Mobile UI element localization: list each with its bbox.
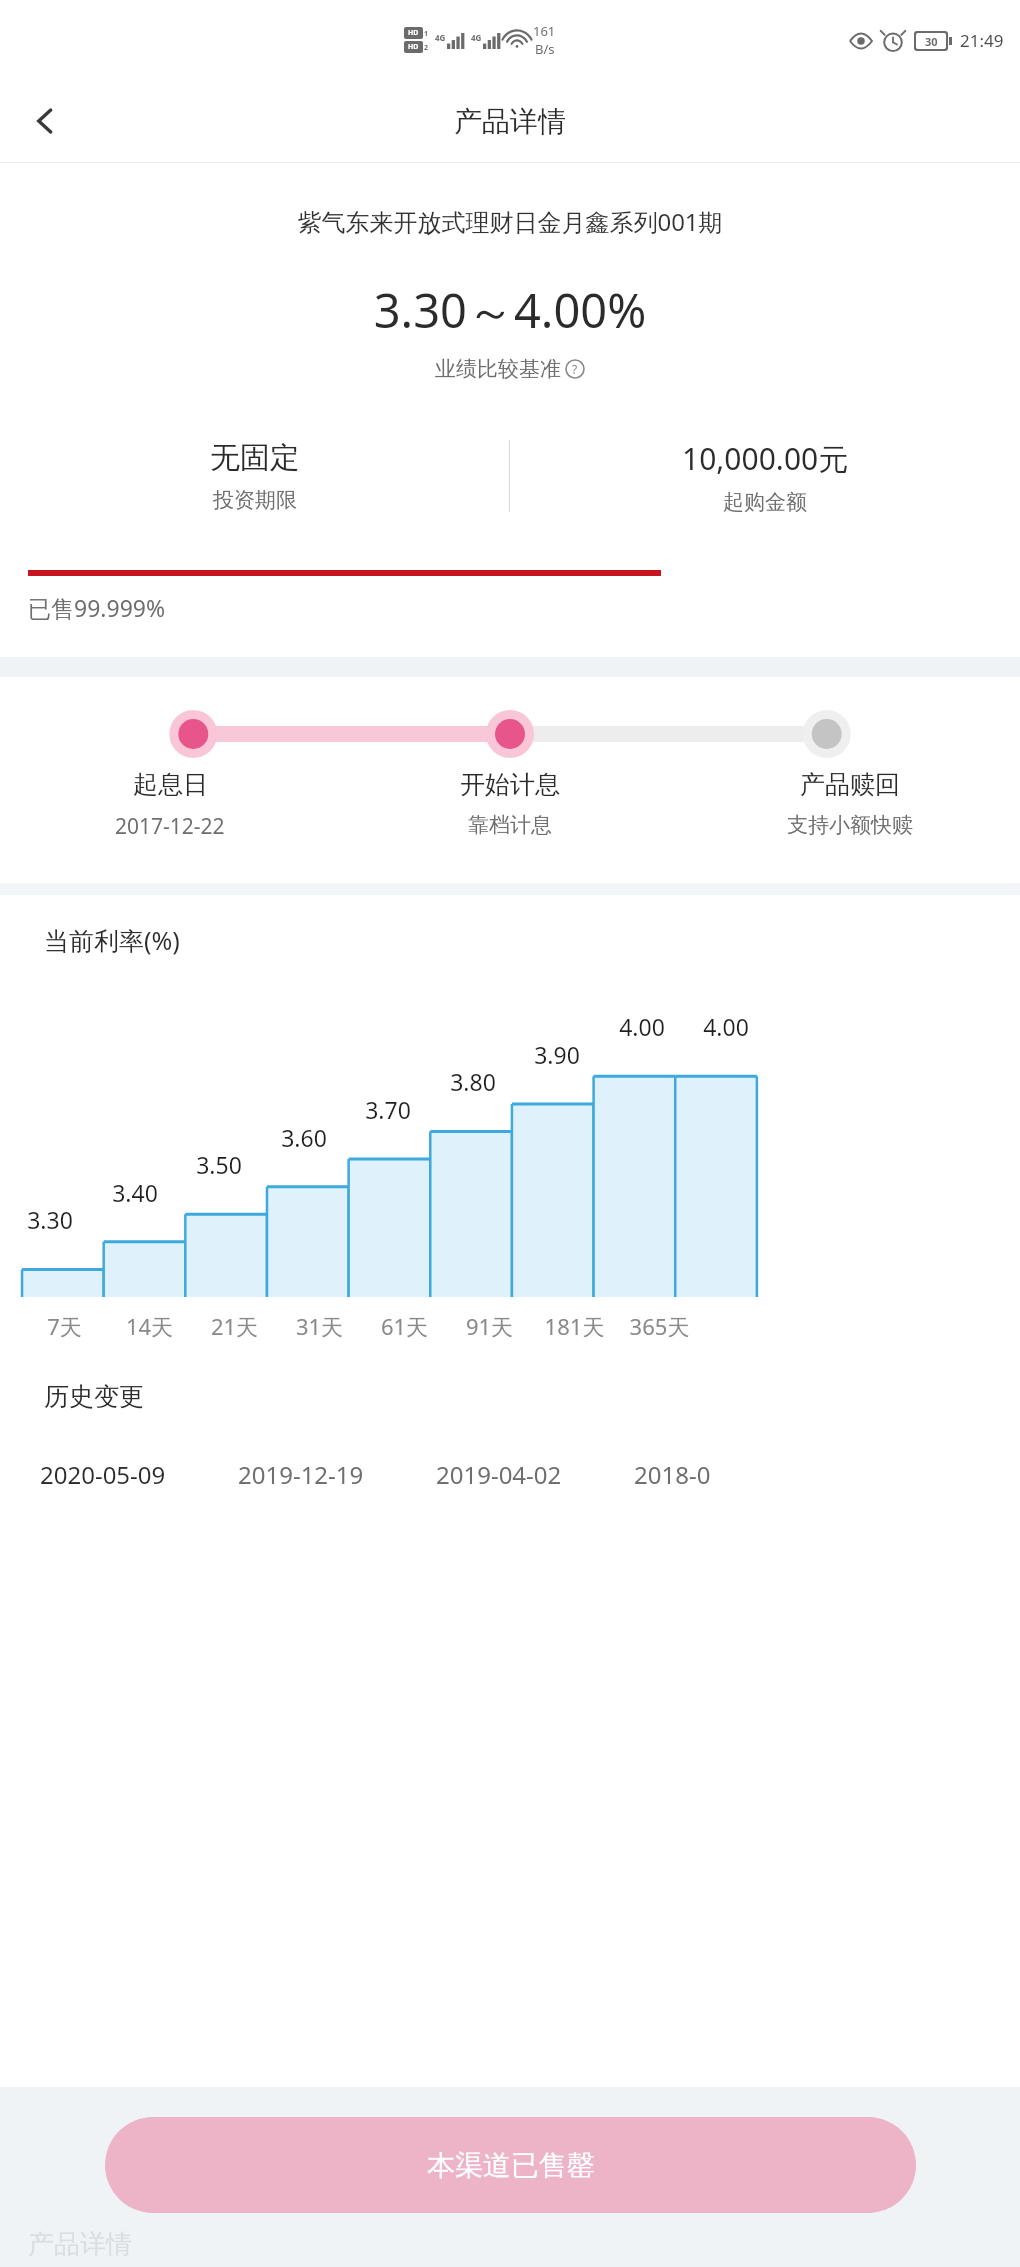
staticText: 7天 [22, 1311, 107, 1341]
staticText: 历史变更 [44, 1381, 144, 1412]
staticText: 3.70 [352, 1094, 424, 1125]
staticText: 4G [435, 32, 446, 43]
staticText: 10,000.00元 [682, 438, 849, 479]
staticText: 3.60 [268, 1122, 340, 1153]
staticText: 3.90 [521, 1039, 593, 1070]
staticText: 支持小额快赎 [787, 812, 913, 838]
staticText: 2020-05-09 [40, 1458, 238, 1491]
staticText: 181天 [532, 1311, 617, 1341]
staticText: 业绩比较基准 [435, 356, 561, 382]
staticText: 3.80 [437, 1066, 509, 1097]
staticText: 产品详情 [454, 104, 566, 139]
staticText: 61天 [362, 1311, 447, 1341]
staticText: B/s [535, 40, 555, 58]
staticText: 产品赎回 [800, 769, 900, 800]
staticText: 靠档计息 [468, 812, 552, 838]
staticText: 365天 [617, 1311, 702, 1341]
staticText: 已售99.999% [28, 592, 166, 623]
staticText: ? [572, 361, 578, 377]
staticText: 21天 [192, 1311, 277, 1341]
staticText: 30 [925, 34, 938, 49]
staticText: 起购金额 [723, 489, 807, 515]
staticText: 4.00 [690, 1011, 762, 1042]
button[interactable]: 说明 [564, 358, 586, 380]
staticText: 21:49 [960, 29, 1004, 52]
staticText: 无固定 [210, 439, 300, 477]
staticText: 4G [471, 32, 482, 43]
staticText: 开始计息 [460, 769, 560, 800]
staticText: 2017-12-22 [115, 812, 225, 841]
staticText: 2019-12-19 [238, 1458, 436, 1491]
staticText: 31天 [277, 1311, 362, 1341]
staticText: 2 [424, 43, 429, 53]
staticText: 2019-04-02 [436, 1458, 634, 1491]
staticText: 4.00 [606, 1011, 678, 1042]
staticText: 3.30 [14, 1204, 86, 1235]
staticText: 3.40 [99, 1177, 171, 1208]
staticText: 91天 [447, 1311, 532, 1341]
staticText: 产品详情 [28, 2228, 132, 2261]
staticText: 1 [424, 29, 429, 39]
staticText: 紫气东来开放式理财日金月鑫系列001期 [0, 205, 1020, 238]
staticText: 2018-0 [634, 1458, 832, 1491]
staticText: 161 [533, 22, 556, 40]
staticText: 本渠道已售罄 [427, 2148, 595, 2183]
staticText: 起息日 [133, 769, 208, 800]
button[interactable]: Back [18, 94, 72, 148]
staticText: 3.30～4.00% [0, 278, 1020, 342]
staticText: 当前利率(%) [44, 923, 180, 957]
button[interactable]: 本渠道已售罄 [105, 2117, 916, 2213]
staticText: HD [408, 42, 419, 52]
staticText: 投资期限 [213, 487, 297, 513]
staticText: 14天 [107, 1311, 192, 1341]
staticText: HD [408, 28, 419, 38]
staticText: 3.50 [183, 1149, 255, 1180]
